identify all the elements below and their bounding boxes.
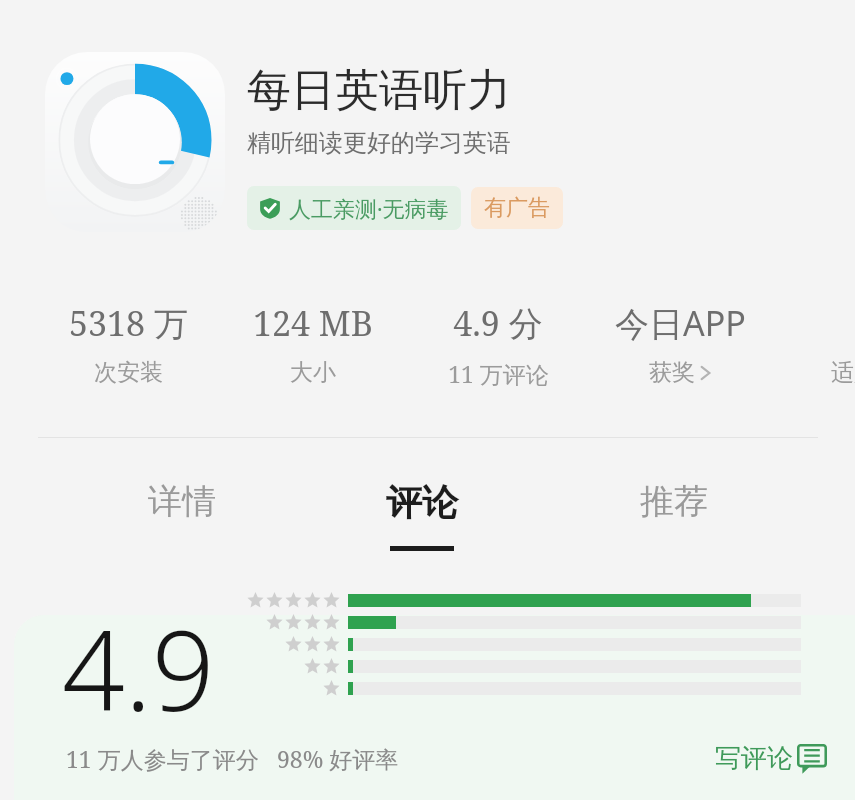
staticText: 次安装: [94, 358, 163, 387]
staticText: 详情: [148, 480, 216, 523]
staticText: 98% 好评率: [277, 743, 399, 774]
staticText: 5318 万: [69, 300, 188, 346]
staticText: 写评论: [715, 742, 793, 775]
staticText: 11 万评论: [448, 358, 549, 389]
staticText: 评论: [386, 480, 458, 525]
button[interactable]: 写评论: [711, 738, 831, 779]
button[interactable]: 3: [795, 300, 855, 387]
staticText: 适用于: [831, 358, 855, 387]
staticText: 今日APP: [615, 300, 746, 346]
staticText: 124 MB: [253, 300, 373, 346]
staticText: 11 万人参与了评分: [66, 743, 259, 774]
staticText: 大小: [290, 358, 336, 387]
button[interactable]: Write a review: [797, 744, 827, 774]
staticText: 4.9: [62, 593, 215, 743]
button[interactable]: 今日APP: [600, 300, 760, 387]
button[interactable]: App icon: [45, 52, 225, 232]
button[interactable]: 详情: [112, 480, 252, 523]
staticText: 推荐: [640, 480, 708, 523]
staticText: 4.9 分: [453, 300, 543, 346]
staticText: 有广告: [484, 194, 550, 222]
button[interactable]: 评论: [352, 480, 492, 551]
staticText: 每日英语听力: [247, 63, 511, 118]
staticText: 人工亲测·无病毒: [289, 193, 449, 223]
button[interactable]: 人工亲测·无病毒: [247, 186, 461, 230]
staticText: 精听细读更好的学习英语: [247, 128, 511, 158]
button[interactable]: 有广告: [471, 187, 563, 229]
button[interactable]: 推荐: [604, 480, 744, 523]
button[interactable]: 4.9 分: [428, 300, 568, 389]
button[interactable]: 5318 万: [58, 300, 198, 387]
staticText: 获奖: [649, 358, 695, 387]
button[interactable]: 124 MB: [243, 300, 383, 387]
